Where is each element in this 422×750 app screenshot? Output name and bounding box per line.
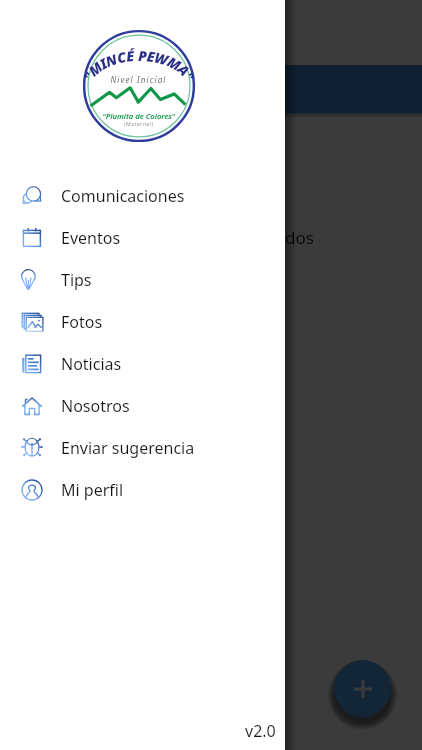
button[interactable]: Enviar sugerencia [0,427,285,469]
staticText: No se encontraron resultados [77,226,314,249]
staticText: Enviar sugerencia [61,437,195,459]
staticText: Mi perfil [61,479,124,501]
button[interactable]: Agregar [334,660,391,717]
button[interactable]: Eventos [0,217,285,259]
button[interactable]: Fotos [0,301,285,343]
button[interactable]: Tips [0,259,285,301]
button[interactable]: Mi perfil [0,469,285,511]
staticText: Fotos [61,311,103,333]
button[interactable]: Noticias [0,343,285,385]
staticText: Comunicaciones [61,185,185,207]
staticText: Nosotros [61,395,130,417]
staticText: Eventos [61,227,121,249]
staticText: Tips [61,269,92,291]
staticText: v2.0 [245,720,276,742]
button[interactable]: Comunicaciones [0,175,285,217]
button[interactable]: Nosotros [0,385,285,427]
staticText: Noticias [61,353,122,375]
